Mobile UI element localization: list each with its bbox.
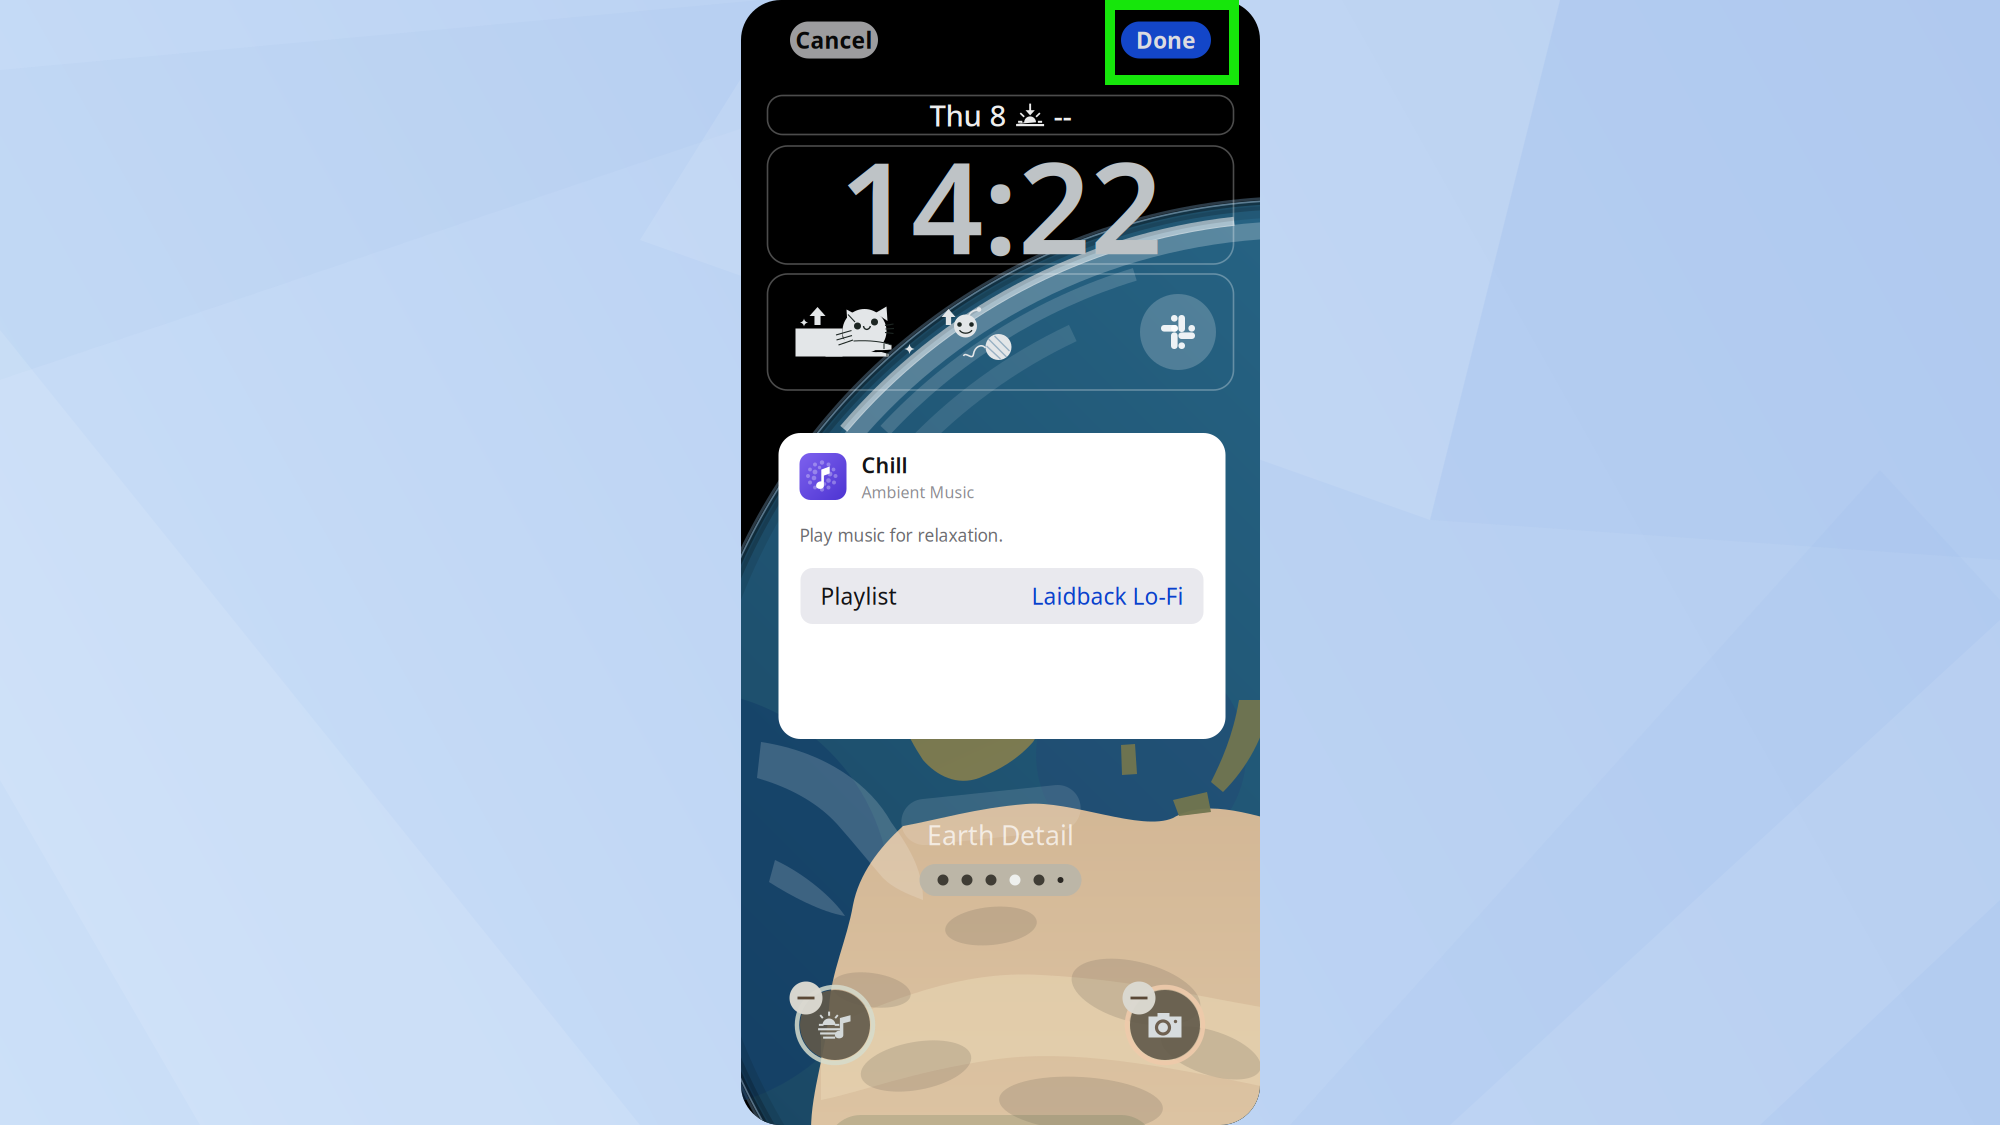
button[interactable]: Ambient music shortcut [794,984,876,1066]
staticText: 14:22 [839,121,1162,289]
staticText: Done [1136,25,1196,55]
staticText: -- [1053,95,1071,134]
button[interactable]: Done [1121,21,1211,58]
staticText: Cancel [795,25,872,55]
staticText: Play music for relaxation. [799,523,1003,546]
button[interactable]: Remove control [789,981,822,1014]
staticText: Ambient Music [861,481,974,503]
staticText: Earth Detail [927,817,1074,853]
button[interactable]: Playlist [800,568,1203,624]
staticText: Chill [861,451,907,479]
button[interactable]: Cancel [790,21,878,58]
staticText: Laidback Lo-Fi [1031,581,1183,611]
staticText: Playlist [820,581,896,611]
staticText: Thu 8 [929,95,1006,134]
button[interactable]: Camera shortcut [1124,984,1206,1066]
button[interactable]: Remove control [1122,981,1155,1014]
